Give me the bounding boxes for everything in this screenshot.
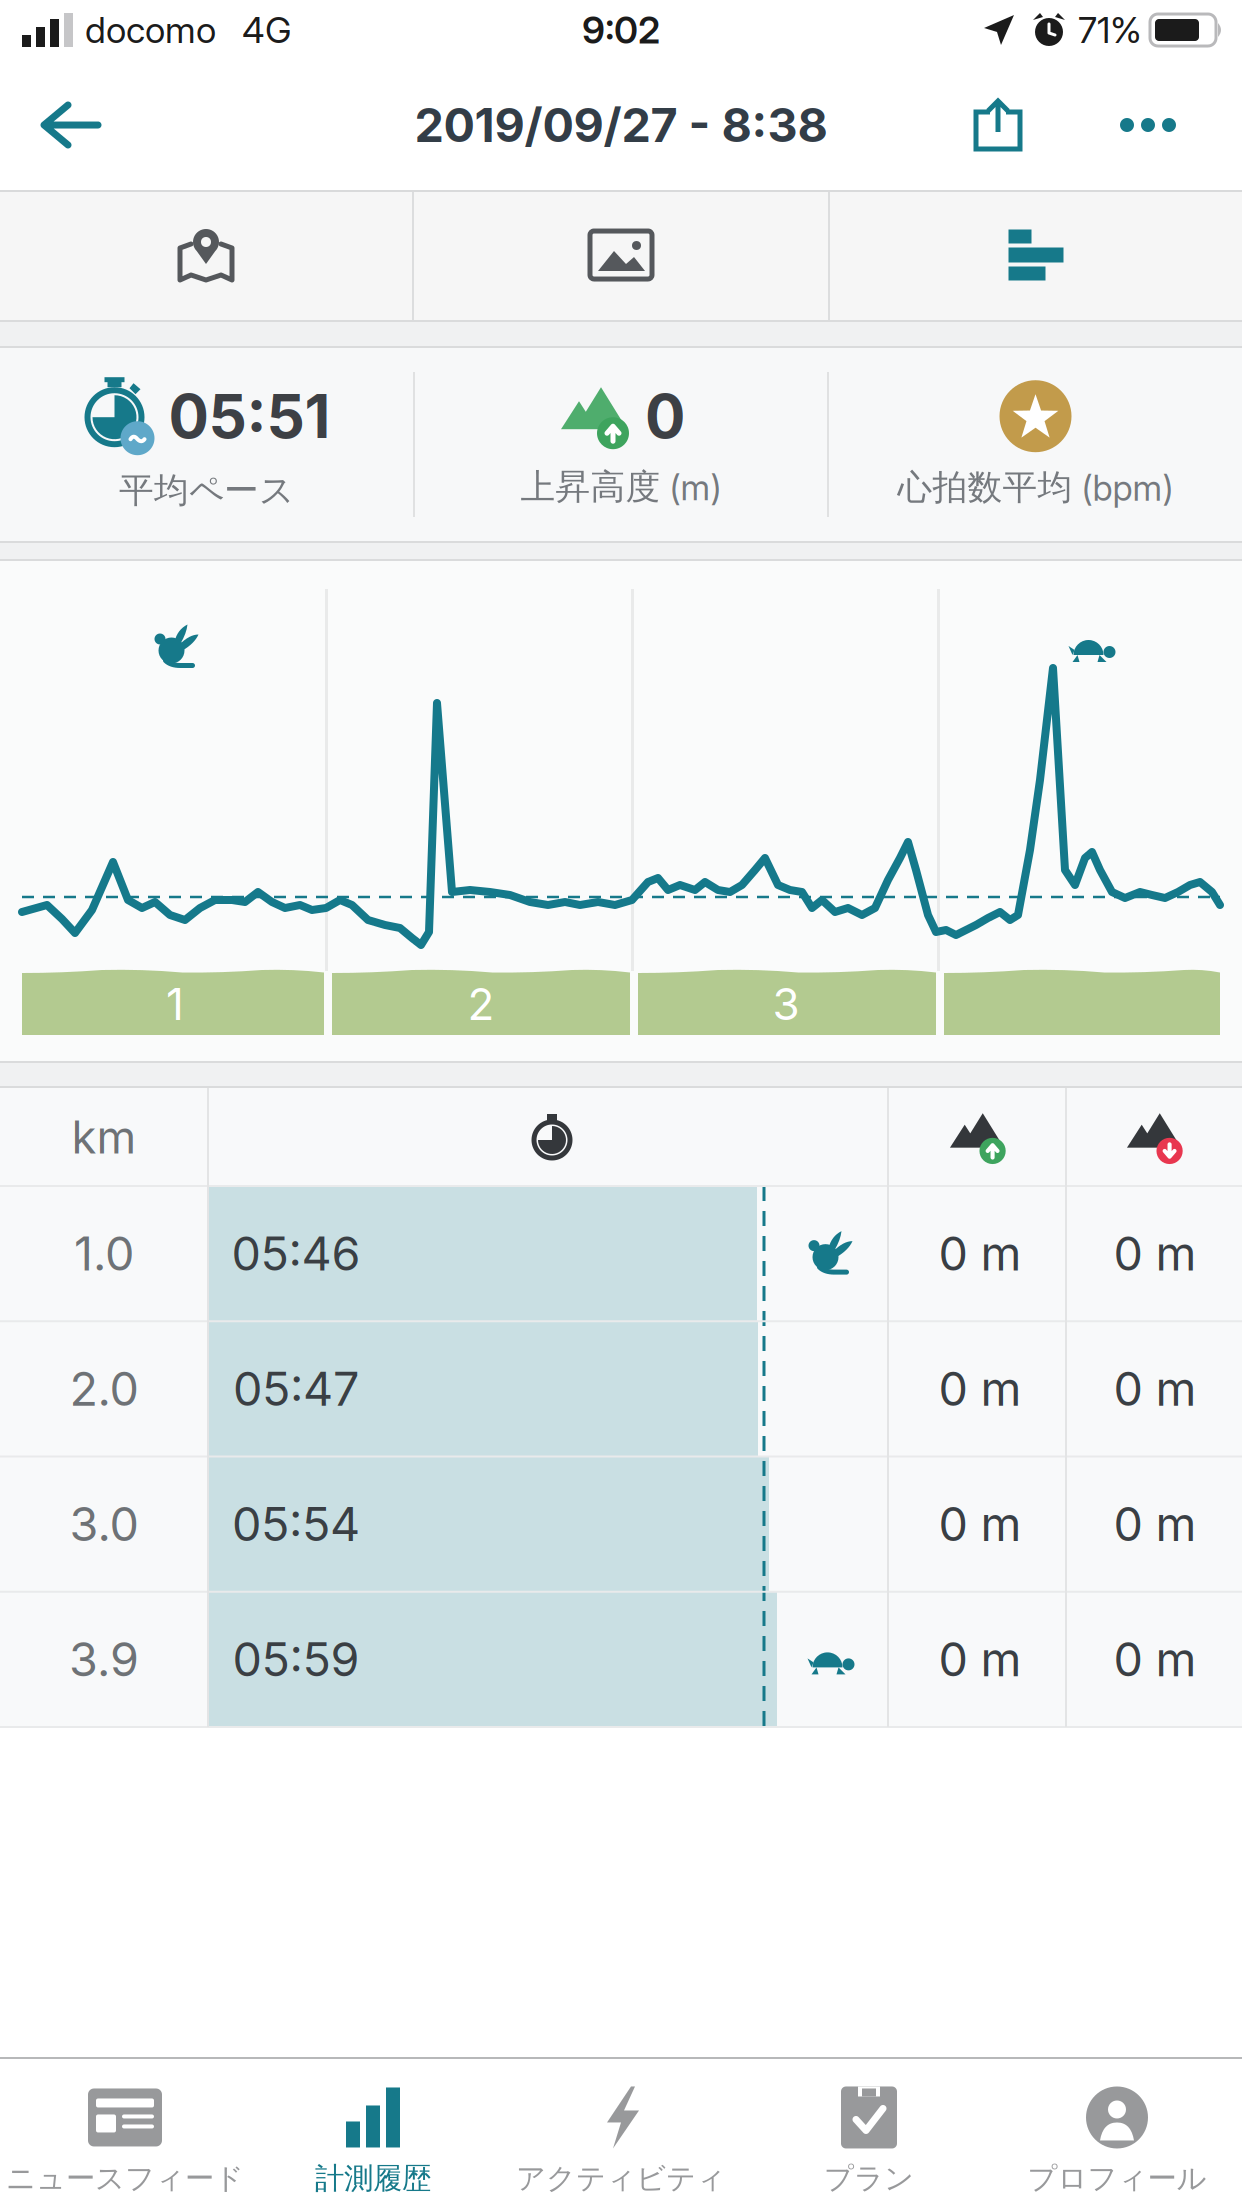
staticText: docomo: [85, 9, 216, 51]
button[interactable]: Back: [0, 103, 130, 147]
button[interactable]: ニュースフィード: [1, 2055, 249, 2208]
button[interactable]: Statistics: [830, 190, 1242, 320]
button[interactable]: More: [1020, 118, 1242, 132]
staticText: 71%: [1078, 9, 1142, 51]
staticText: 0 m: [1113, 1497, 1196, 1552]
staticText: 3.0: [69, 1497, 138, 1552]
staticText: 9:02: [582, 8, 660, 52]
staticText: 05:54: [232, 1497, 360, 1552]
button[interactable]: アクティビティ: [497, 2055, 745, 2208]
staticText: 4G: [242, 9, 291, 51]
staticText: 1: [166, 978, 184, 1030]
staticText: 0 m: [938, 1226, 1021, 1281]
button[interactable]: プラン: [745, 2055, 993, 2208]
staticText: 0 m: [938, 1497, 1021, 1552]
staticText: 0 m: [1113, 1632, 1196, 1687]
staticText: 計測履歴: [315, 2160, 431, 2196]
staticText: 1.0: [74, 1226, 134, 1281]
staticText: 05:47: [233, 1361, 359, 1416]
staticText: アクティビティ: [516, 2160, 726, 2196]
staticText: プラン: [824, 2160, 914, 2196]
staticText: 2019/09/27 - 8:38: [414, 97, 827, 153]
staticText: 0 m: [1113, 1226, 1196, 1281]
button[interactable]: Photos: [414, 190, 828, 320]
button[interactable]: Share: [946, 100, 1020, 150]
button[interactable]: 計測履歴: [249, 2055, 497, 2208]
staticText: km: [71, 1110, 136, 1164]
staticText: 0 m: [1113, 1361, 1196, 1416]
staticText: 05:59: [232, 1632, 359, 1687]
staticText: 心拍数平均 (bpm): [897, 466, 1173, 509]
staticText: 05:51: [168, 381, 330, 452]
staticText: 0: [645, 381, 685, 452]
staticText: 3.9: [69, 1632, 139, 1687]
button[interactable]: プロフィール: [993, 2055, 1241, 2208]
staticText: ニュースフィード: [6, 2160, 244, 2196]
button[interactable]: Map: [0, 190, 412, 320]
staticText: 0 m: [938, 1632, 1021, 1687]
staticText: 上昇高度 (m): [520, 466, 721, 508]
staticText: 05:46: [231, 1226, 360, 1281]
staticText: 平均ペース: [119, 469, 294, 512]
staticText: 2: [467, 978, 494, 1030]
staticText: プロフィール: [1027, 2160, 1206, 2196]
staticText: 3: [772, 978, 799, 1030]
staticText: 0 m: [938, 1361, 1021, 1416]
staticText: 2.0: [69, 1361, 138, 1416]
